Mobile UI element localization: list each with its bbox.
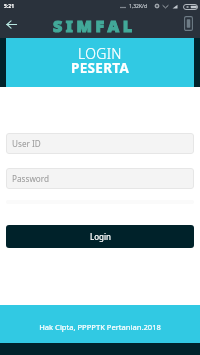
staticText: Login	[90, 231, 111, 242]
staticText: Hak Cipta, PPPPTK Pertanian.2018	[39, 322, 161, 332]
button[interactable]: Devices	[177, 10, 199, 36]
staticText: 5:21	[4, 3, 14, 10]
staticText: Password	[12, 173, 50, 184]
button[interactable]: User ID	[6, 133, 194, 154]
staticText: SIMFAL	[53, 15, 136, 37]
staticText: SIMFAL	[53, 15, 136, 37]
staticText: LOGIN	[78, 44, 122, 63]
button[interactable]: Password	[6, 168, 194, 189]
staticText: 1,32K/d	[129, 3, 147, 10]
staticText: User ID	[12, 138, 41, 149]
button[interactable]: Login	[6, 225, 194, 248]
button[interactable]: Back	[0, 13, 23, 39]
staticText: PESERTA	[71, 59, 130, 77]
